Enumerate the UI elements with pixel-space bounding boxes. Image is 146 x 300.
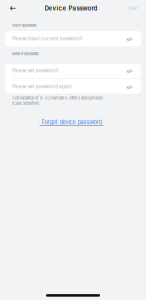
staticText: Please input current password [12,36,82,41]
button[interactable]: Show repeated password [0,0,146,300]
staticText: (Case sensitive) [12,101,39,106]
staticText: Please set password [12,68,58,73]
staticText: Device Password [44,4,97,12]
staticText: Combination of 8-32 numbers, letters and… [12,95,103,100]
button[interactable]: Forgot device password [0,0,146,300]
staticText: Forgot device password [41,119,101,126]
staticText: Please set password again [12,84,72,89]
button[interactable]: Back [0,0,146,300]
staticText: Save [128,6,137,11]
staticText: Old Password [12,23,36,28]
button[interactable]: Show new password [0,0,146,300]
button[interactable]: Save [0,0,146,300]
button[interactable]: Show current password [0,0,146,300]
staticText: New Password [12,51,38,56]
